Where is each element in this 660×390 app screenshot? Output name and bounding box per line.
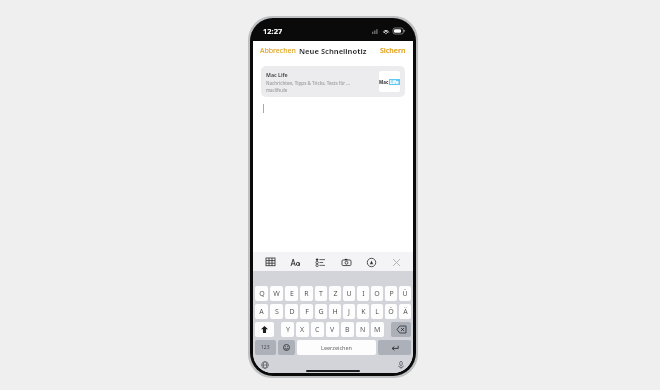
staticText: D xyxy=(289,307,295,317)
button[interactable]: R xyxy=(300,286,313,301)
button[interactable]: Abbrechen xyxy=(258,44,298,58)
staticText: K xyxy=(361,307,366,317)
button[interactable]: Ü xyxy=(399,286,411,301)
staticText: maclife.de xyxy=(266,87,288,93)
button[interactable]: Ä xyxy=(399,304,411,319)
button[interactable]: X xyxy=(296,322,309,337)
staticText: Leerzeichen xyxy=(321,344,353,351)
staticText: Mac xyxy=(379,79,389,85)
button[interactable]: T xyxy=(315,286,327,301)
staticText: X xyxy=(300,325,305,335)
staticText: Q xyxy=(259,289,265,299)
staticText: R xyxy=(304,289,309,299)
button[interactable]: C xyxy=(311,322,324,337)
button[interactable]: D xyxy=(285,304,298,319)
button[interactable]: Table xyxy=(262,254,278,270)
button[interactable]: I xyxy=(357,286,369,301)
staticText: 123 xyxy=(261,344,270,351)
staticText: L xyxy=(375,307,379,317)
button[interactable]: Return xyxy=(378,340,411,355)
button[interactable]: L xyxy=(371,304,383,319)
staticText: Nachrichten, Tipps & Tricks, Tests für … xyxy=(266,80,351,86)
button[interactable]: Shift xyxy=(255,322,274,337)
button[interactable]: Y xyxy=(281,322,294,337)
staticText: N xyxy=(360,325,366,335)
staticText: Life xyxy=(390,79,399,85)
staticText: V xyxy=(330,325,335,335)
button[interactable]: Close xyxy=(388,254,404,270)
button[interactable]: G xyxy=(315,304,327,319)
staticText: Abbrechen xyxy=(260,46,296,56)
staticText: G xyxy=(318,307,324,317)
button[interactable]: M xyxy=(371,322,384,337)
staticText: B xyxy=(345,325,350,335)
staticText: T xyxy=(319,289,323,299)
button[interactable]: Leerzeichen xyxy=(297,340,376,355)
button[interactable]: Text format xyxy=(287,254,303,270)
button[interactable]: F xyxy=(300,304,313,319)
staticText: Sichern xyxy=(380,46,406,56)
button[interactable]: A xyxy=(255,304,268,319)
button[interactable]: H xyxy=(329,304,341,319)
staticText: P xyxy=(389,289,394,299)
staticText: Ö xyxy=(388,307,394,317)
button[interactable]: Z xyxy=(329,286,341,301)
button[interactable]: Ö xyxy=(385,304,397,319)
staticText: F xyxy=(305,307,309,317)
staticText: U xyxy=(346,289,352,299)
staticText: Ä xyxy=(403,307,408,317)
button[interactable]: O xyxy=(371,286,383,301)
staticText: W xyxy=(273,289,280,299)
button[interactable]: W xyxy=(270,286,283,301)
button[interactable]: 123 xyxy=(255,340,276,355)
button[interactable]: Sichern xyxy=(378,44,408,58)
button[interactable]: Change keyboard xyxy=(259,359,271,371)
staticText: O xyxy=(374,289,380,299)
staticText: Mac Life xyxy=(266,71,288,78)
button[interactable]: N xyxy=(356,322,369,337)
button[interactable]: U xyxy=(343,286,355,301)
button[interactable]: B xyxy=(341,322,354,337)
button[interactable]: Markup xyxy=(363,254,379,270)
staticText: 12:27 xyxy=(263,26,283,36)
button[interactable]: E xyxy=(285,286,298,301)
button[interactable]: Mac Life xyxy=(261,66,405,97)
button[interactable]: S xyxy=(270,304,283,319)
button[interactable]: Checklist xyxy=(312,254,328,270)
staticText: Neue Schnellnotiz xyxy=(299,46,367,56)
staticText: I xyxy=(362,289,365,299)
staticText: E xyxy=(290,289,294,299)
staticText: C xyxy=(315,325,320,335)
button[interactable]: Emoji xyxy=(278,340,295,355)
button[interactable]: J xyxy=(343,304,355,319)
staticText: J xyxy=(348,307,350,317)
staticText: Z xyxy=(333,289,338,299)
button[interactable]: Q xyxy=(255,286,268,301)
button[interactable]: K xyxy=(357,304,369,319)
button[interactable]: Backspace xyxy=(391,322,411,337)
staticText: H xyxy=(332,307,338,317)
button[interactable]: Dictate xyxy=(395,359,407,371)
staticText: Y xyxy=(286,325,290,335)
staticText: Ü xyxy=(402,289,408,299)
button[interactable]: P xyxy=(385,286,397,301)
staticText: M xyxy=(374,325,381,335)
button[interactable]: Camera xyxy=(338,254,354,270)
staticText: S xyxy=(275,307,279,317)
button[interactable]: V xyxy=(326,322,339,337)
staticText: A xyxy=(259,307,264,317)
